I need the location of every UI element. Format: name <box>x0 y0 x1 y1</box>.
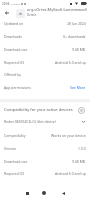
button[interactable]: Help <box>77 106 85 114</box>
staticText: 0+ downloads <box>63 34 86 39</box>
button[interactable]: Redmi M2004C3L/G (this device) <box>0 115 90 128</box>
button[interactable]: Version <box>0 142 90 155</box>
staticText: See More <box>70 85 86 90</box>
staticText: 1.0.0 <box>78 146 86 151</box>
button[interactable]: App permissions <box>0 81 90 94</box>
button[interactable]: Back <box>0 6 14 20</box>
staticText: 20:56 <box>2 2 10 6</box>
button[interactable]: Offered by <box>0 68 90 81</box>
staticText: 9.68 MB <box>72 159 86 164</box>
button[interactable]: Required OS <box>0 56 90 69</box>
staticText: Downloads <box>4 34 63 39</box>
button[interactable]: Downloads <box>0 30 90 43</box>
staticText: Redmi M2004C3L/G (this device) <box>4 119 81 124</box>
staticText: 9.68 MB <box>72 47 86 52</box>
button[interactable]: Back <box>57 187 69 199</box>
button[interactable]: Download size <box>0 43 90 56</box>
button[interactable]: Required OS <box>0 167 90 180</box>
staticText: org.vOrtex.MyVault (unreviewed) <box>27 7 87 12</box>
staticText: Version <box>4 146 78 151</box>
button[interactable]: Download size <box>0 155 90 168</box>
button[interactable]: Compatibility <box>0 129 90 142</box>
staticText: Compatibility <box>4 133 51 138</box>
staticText: Updated on <box>4 21 67 26</box>
staticText: Required OS <box>4 171 55 176</box>
button[interactable]: Recent apps <box>21 187 33 199</box>
staticText: Compatibility for your active devices <box>4 107 77 113</box>
button[interactable]: Updated on <box>0 17 90 30</box>
staticText: Works on your device <box>51 133 86 138</box>
staticText: App permissions <box>4 85 70 90</box>
staticText: Details <box>27 13 37 17</box>
staticText: 28 Jun 2024 <box>67 21 86 26</box>
staticText: Download size <box>4 47 72 52</box>
staticText: Android 6.0 and up <box>55 60 86 65</box>
staticText: Required OS <box>4 60 55 65</box>
staticText: Offered by <box>4 72 86 77</box>
button[interactable]: Home <box>38 187 50 199</box>
staticText: Download size <box>4 159 72 164</box>
staticText: 7.3KB/s <box>11 2 20 5</box>
staticText: Android 6.0 and up <box>55 171 86 176</box>
